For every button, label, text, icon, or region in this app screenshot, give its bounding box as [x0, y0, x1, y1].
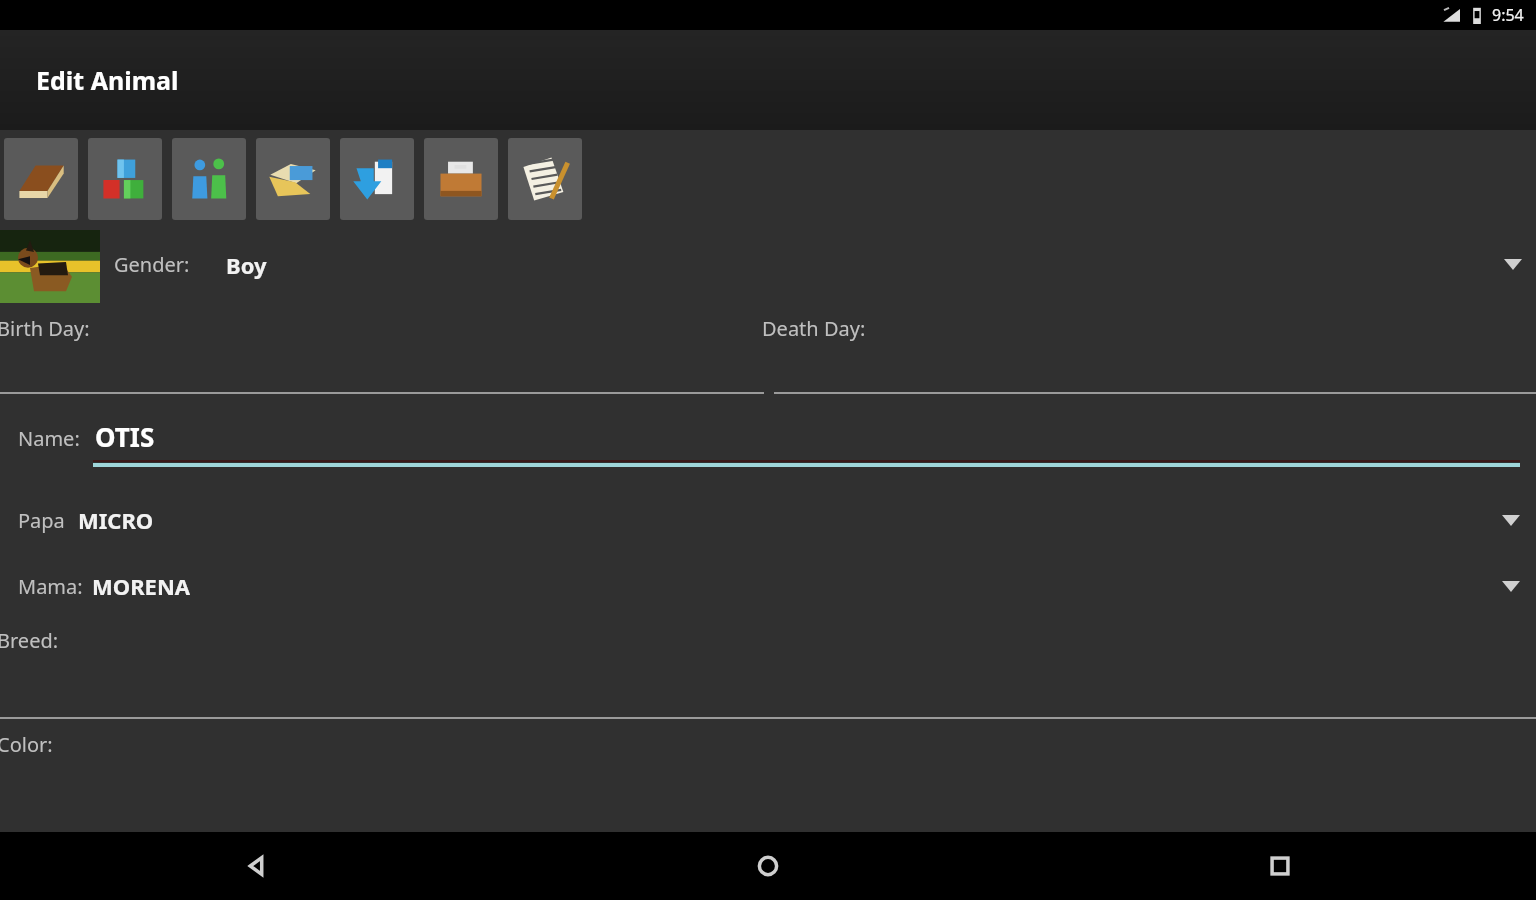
- button[interactable]: Boy: [0, 222, 1536, 307]
- button[interactable]: Papa: [0, 487, 1536, 553]
- button[interactable]: OTIS: [93, 411, 1520, 467]
- button[interactable]: Notes: [508, 138, 582, 220]
- staticText: Boy: [226, 250, 267, 280]
- staticText: Death Day:: [762, 315, 866, 342]
- button[interactable]: Blocks: [88, 138, 162, 220]
- staticText: Color:: [0, 731, 53, 758]
- button[interactable]: Folder: [256, 138, 330, 220]
- button[interactable]: People: [172, 138, 246, 220]
- staticText: Name:: [18, 425, 80, 452]
- button[interactable]: Back: [0, 832, 512, 900]
- button[interactable]: Book: [4, 138, 78, 220]
- staticText: MORENA: [92, 571, 191, 601]
- button[interactable]: [768, 364, 1536, 394]
- button[interactable]: Recent apps: [1024, 832, 1536, 900]
- staticText: Edit Animal: [36, 63, 179, 97]
- button[interactable]: Import: [340, 138, 414, 220]
- button[interactable]: Home: [512, 832, 1024, 900]
- staticText: 9:54: [1492, 4, 1524, 26]
- staticText: MICRO: [78, 505, 154, 535]
- staticText: Mama:: [18, 573, 83, 600]
- button[interactable]: Briefcase: [424, 138, 498, 220]
- staticText: Gender:: [114, 251, 190, 278]
- button[interactable]: Mama:: [0, 553, 1536, 619]
- staticText: Birth Day:: [0, 315, 90, 342]
- button[interactable]: [0, 364, 768, 394]
- button[interactable]: [0, 679, 1536, 719]
- staticText: Breed:: [0, 627, 59, 654]
- staticText: OTIS: [95, 419, 155, 454]
- staticText: Papa: [18, 507, 65, 534]
